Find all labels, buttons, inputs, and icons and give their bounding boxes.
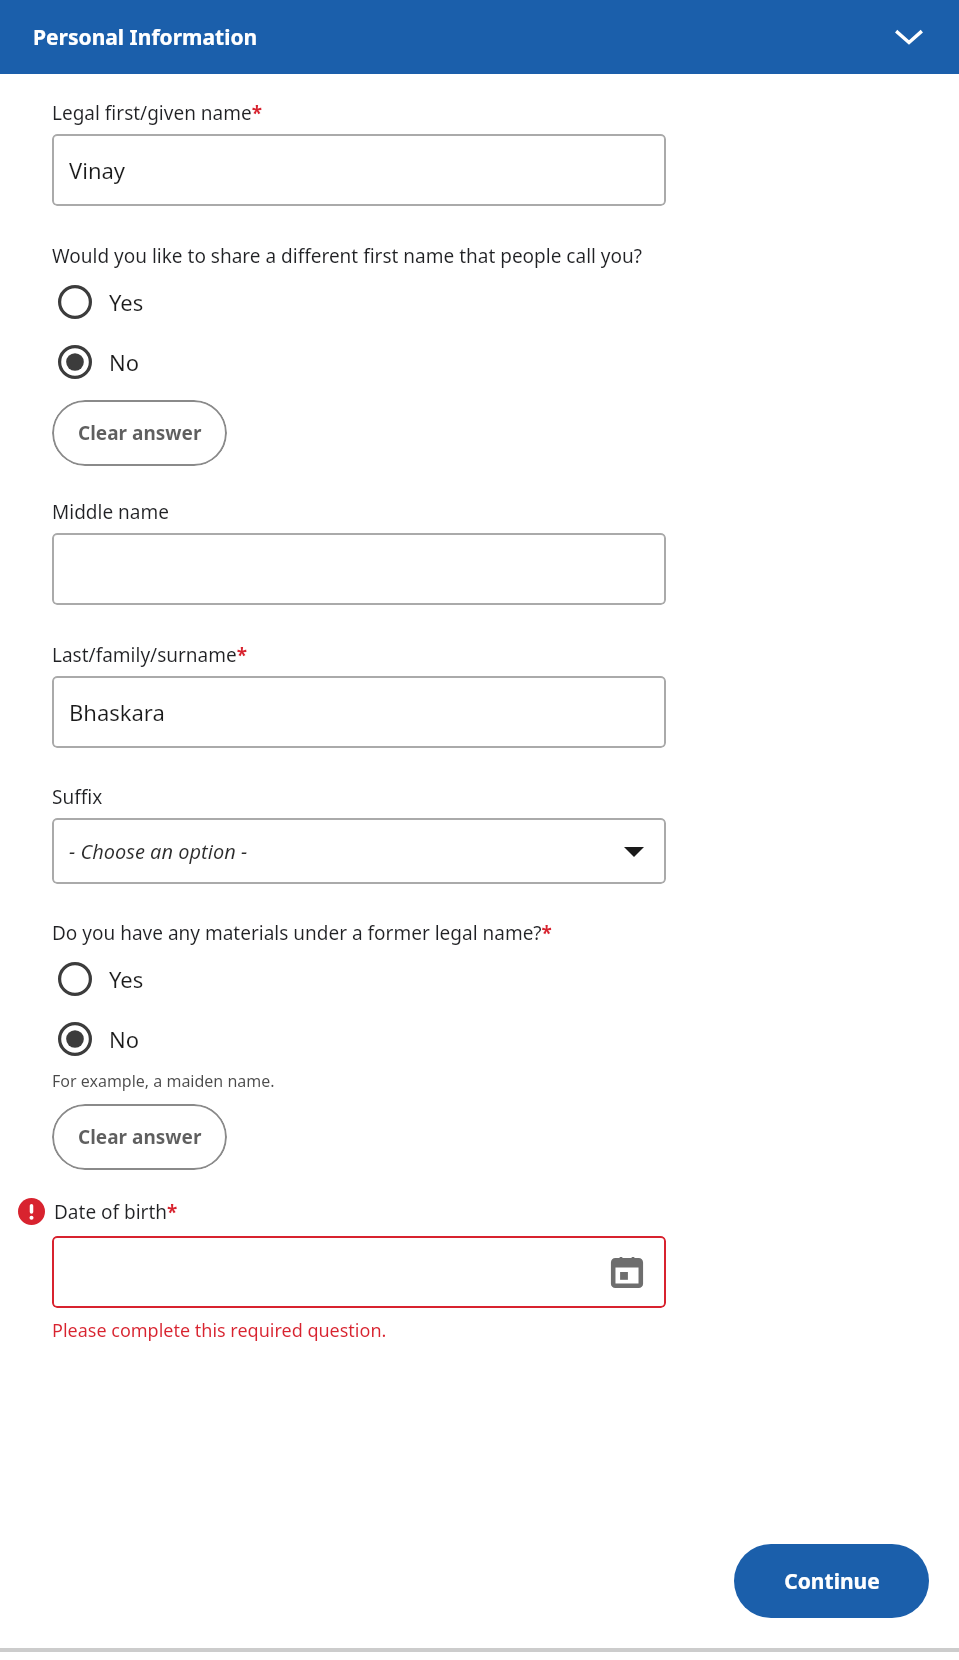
button[interactable]: Continue <box>734 1544 929 1618</box>
other: Open calendar picker <box>610 1255 644 1289</box>
staticText: Please complete this required question. <box>52 1318 387 1343</box>
staticText: No <box>109 347 140 377</box>
staticText: Clear answer <box>78 1124 202 1150</box>
staticText: Date of birth* <box>54 1199 178 1225</box>
button[interactable]: Open calendar picker <box>52 1236 666 1308</box>
button[interactable]: Yes <box>58 955 144 1003</box>
staticText: No <box>109 1024 140 1054</box>
button[interactable]: Clear answer <box>52 400 227 466</box>
staticText: Would you like to share a different firs… <box>52 243 643 269</box>
staticText: Bhaskara <box>69 697 165 727</box>
staticText: Yes <box>109 964 144 994</box>
staticText: Continue <box>784 1567 880 1596</box>
button[interactable]: Personal Information <box>0 0 959 74</box>
staticText: Middle name <box>52 499 169 525</box>
staticText: Clear answer <box>78 420 202 446</box>
staticText: Legal first/given name* <box>52 100 262 126</box>
button[interactable]: Clear answer <box>52 1104 227 1170</box>
staticText: Suffix <box>52 784 103 810</box>
button[interactable] <box>52 533 666 605</box>
other: Collapse section <box>885 13 933 61</box>
staticText: Do you have any materials under a former… <box>52 920 552 946</box>
staticText: Personal Information <box>33 23 258 52</box>
button[interactable]: Yes <box>58 278 144 326</box>
staticText: Vinay <box>69 155 126 185</box>
button[interactable]: Bhaskara <box>52 676 666 748</box>
staticText: Last/family/surname* <box>52 642 248 668</box>
staticText: Yes <box>109 287 144 317</box>
button[interactable]: - Choose an option - <box>52 818 666 884</box>
staticText: For example, a maiden name. <box>52 1070 275 1092</box>
staticText: - Choose an option - <box>69 838 248 865</box>
button[interactable]: Vinay <box>52 134 666 206</box>
button[interactable]: No <box>58 338 140 386</box>
button[interactable]: No <box>58 1015 140 1063</box>
